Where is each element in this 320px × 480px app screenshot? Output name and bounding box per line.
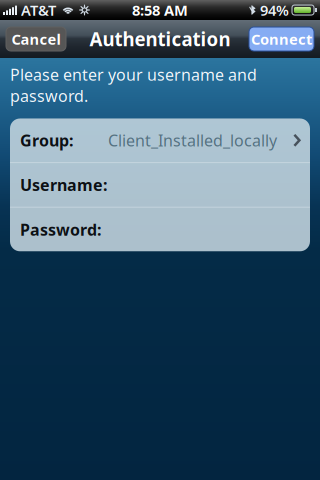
- staticText: AT&T: [21, 0, 56, 20]
- staticText: Client_Installed_locally: [108, 130, 277, 151]
- staticText: Connect: [251, 29, 312, 49]
- staticText: Please enter your username and password.: [10, 64, 257, 106]
- staticText: Username:: [20, 174, 107, 195]
- staticText: 94%: [260, 0, 289, 20]
- button[interactable]: Cancel: [6, 27, 66, 51]
- button[interactable]: Connect: [249, 27, 314, 51]
- staticText: 8:58 AM: [132, 0, 188, 20]
- staticText: Authentication: [89, 27, 230, 51]
- staticText: Password:: [20, 219, 101, 240]
- staticText: Cancel: [11, 29, 60, 49]
- staticText: Group:: [20, 130, 73, 151]
